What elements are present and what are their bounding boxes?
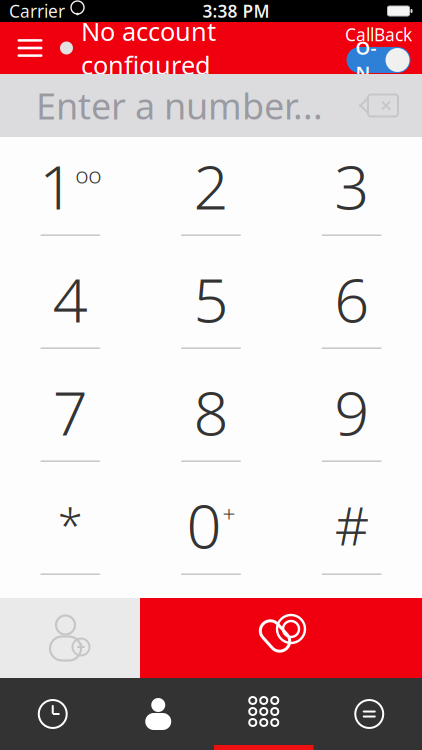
staticText: + [222, 499, 235, 529]
staticText: 6 [334, 258, 369, 339]
button[interactable]: 0 [141, 476, 281, 589]
button[interactable]: 9 [281, 363, 422, 476]
staticText: 3 [334, 145, 369, 226]
button[interactable]: Call [140, 598, 422, 678]
staticText: 0 [186, 484, 221, 565]
button[interactable]: Contacts [105, 678, 211, 750]
button[interactable]: Menu [10, 26, 50, 70]
button[interactable]: Keypad [211, 678, 316, 750]
staticText: CallBack [345, 23, 412, 46]
staticText: 8 [193, 371, 228, 452]
staticText: 5 [193, 258, 228, 339]
staticText: oo [75, 160, 101, 190]
button[interactable]: 6 [281, 250, 422, 363]
staticText: ON [355, 35, 376, 85]
staticText: 4 [53, 258, 88, 339]
button[interactable]: 5 [141, 250, 281, 363]
staticText: Carrier [9, 0, 65, 22]
button[interactable]: 8 [141, 363, 281, 476]
button[interactable]: 4 [0, 250, 141, 363]
button[interactable]: # [281, 476, 422, 589]
staticText: 7 [53, 371, 88, 452]
staticText: 9 [334, 371, 369, 452]
button[interactable]: 7 [0, 363, 141, 476]
staticText: Enter a number... [36, 82, 323, 129]
button[interactable]: Delete [350, 80, 408, 130]
button[interactable]: CallBack toggle, on [345, 23, 412, 73]
button[interactable]: Recents [0, 678, 105, 750]
staticText: No account configured [81, 14, 216, 82]
button[interactable]: 2 [141, 137, 281, 250]
button[interactable]: 3 [281, 137, 422, 250]
staticText: # [335, 489, 369, 560]
button[interactable]: 1 [0, 137, 141, 250]
button[interactable]: * [0, 476, 141, 589]
button[interactable]: Add contact [0, 598, 140, 678]
staticText: 3:38 PM [202, 0, 269, 22]
staticText: * [58, 495, 83, 555]
staticText: 2 [193, 145, 228, 226]
staticText: 1 [39, 145, 74, 226]
button[interactable]: Messages [316, 678, 422, 750]
